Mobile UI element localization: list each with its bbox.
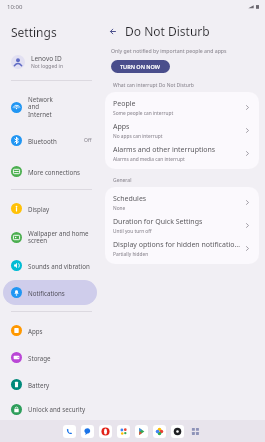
button[interactable]: Back <box>105 23 121 39</box>
button[interactable]: Apps <box>105 119 259 142</box>
staticText: Not logged in <box>31 63 63 70</box>
staticText: Network and Internet <box>28 95 92 119</box>
staticText: TURN ON NOW <box>120 63 161 70</box>
button[interactable]: Unlock and security <box>3 399 97 419</box>
button[interactable]: Apps <box>3 318 97 343</box>
staticText: What can interrupt Do Not Disturb <box>113 82 194 89</box>
staticText: Apps <box>28 327 92 335</box>
button[interactable]: Wallpaper and home screen <box>3 223 97 251</box>
staticText: More connections <box>28 168 92 176</box>
button[interactable]: play <box>135 425 148 438</box>
button[interactable]: grid <box>189 425 202 438</box>
button[interactable]: photos <box>153 425 166 438</box>
staticText: Some people can interrupt <box>113 110 174 117</box>
button[interactable]: Display options for hidden notifications <box>105 237 259 260</box>
staticText: Duration for Quick Settings <box>113 217 203 227</box>
staticText: Lenovo ID <box>31 54 62 63</box>
staticText: Alarms and other interruptions <box>113 145 216 155</box>
staticText: Unlock and security <box>28 405 92 413</box>
button[interactable]: Duration for Quick Settings <box>105 214 259 237</box>
staticText: Sounds and vibration <box>28 262 92 270</box>
button[interactable]: maps <box>117 425 130 438</box>
staticText: None <box>113 205 126 212</box>
staticText: Display options for hidden notifications <box>113 240 240 250</box>
button[interactable]: phone <box>63 425 76 438</box>
staticText: Settings <box>11 24 57 40</box>
staticText: No apps can interrupt <box>113 133 163 140</box>
button[interactable]: Notifications <box>3 280 97 305</box>
staticText: Wallpaper and home screen <box>28 229 92 245</box>
staticText: Only get notified by important people an… <box>111 47 227 54</box>
button[interactable]: settings <box>171 425 184 438</box>
staticText: 10:00 <box>7 3 23 11</box>
staticText: Do Not Disturb <box>125 23 210 39</box>
staticText: Notifications <box>28 289 92 297</box>
button[interactable]: More connections <box>3 159 97 184</box>
button[interactable]: Display <box>3 196 97 221</box>
staticText: Bluetooth <box>28 137 84 145</box>
staticText: General <box>113 177 132 184</box>
button[interactable]: People <box>105 96 259 119</box>
button[interactable]: Bluetooth <box>3 128 97 153</box>
staticText: Schedules <box>113 194 147 204</box>
staticText: Battery <box>28 381 92 389</box>
button[interactable]: Storage <box>3 345 97 370</box>
button[interactable]: messages <box>81 425 94 438</box>
button[interactable]: TURN ON NOW <box>111 60 170 73</box>
staticText: Storage <box>28 354 92 362</box>
staticText: People <box>113 99 136 109</box>
staticText: Until you turn off <box>113 228 152 235</box>
button[interactable]: opera <box>99 425 112 438</box>
button[interactable]: Alarms and other interruptions <box>105 142 259 165</box>
staticText: Off <box>84 137 92 144</box>
staticText: Display <box>28 205 92 213</box>
staticText: Alarms and media can interrupt <box>113 156 185 163</box>
button[interactable]: Sounds and vibration <box>3 253 97 278</box>
button[interactable]: Battery <box>3 372 97 397</box>
staticText: Partially hidden <box>113 251 149 258</box>
button[interactable]: Schedules <box>105 191 259 214</box>
button[interactable]: Network and Internet <box>3 88 97 126</box>
button[interactable]: Lenovo ID <box>0 49 100 75</box>
staticText: Apps <box>113 122 130 132</box>
